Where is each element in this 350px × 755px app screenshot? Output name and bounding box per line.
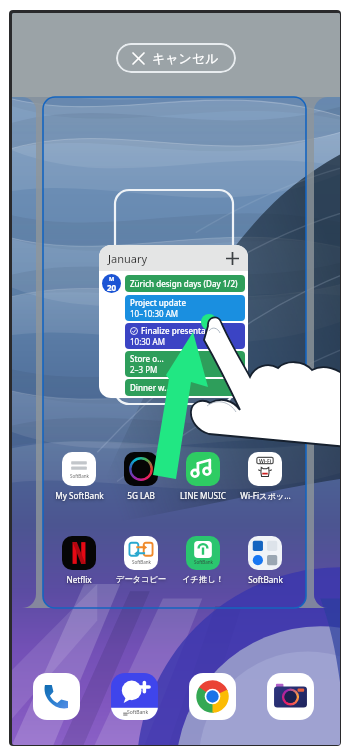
staticText: Dinner w…: [130, 382, 171, 393]
staticText: Netflix: [66, 574, 92, 585]
staticText: 5G LAB: [127, 490, 155, 501]
staticText: Zürich design days (Day 1/2): [130, 278, 238, 289]
button[interactable]: January: [99, 245, 248, 398]
staticText: SoftBank: [194, 559, 213, 565]
staticText: Store o…: [130, 353, 164, 364]
staticText: M: [109, 275, 115, 282]
staticText: SoftBank: [132, 559, 151, 565]
button[interactable]: Messages: [111, 673, 158, 720]
staticText: 10:30 AM: [130, 336, 165, 347]
button[interactable]: Wi-Fi: [237, 452, 293, 501]
button[interactable]: SoftBank: [113, 536, 169, 584]
button[interactable]: Netflix: [51, 536, 107, 585]
button[interactable]: SoftBank: [175, 536, 231, 584]
button[interactable]: SoftBank: [51, 452, 107, 501]
staticText: Finalize presenta…: [141, 325, 213, 336]
staticText: キャンセル: [152, 50, 219, 66]
staticText: Wi-Fiスポッ…: [240, 490, 291, 501]
staticText: SoftBank: [248, 574, 283, 585]
button[interactable]: 5G LAB: [113, 452, 169, 501]
staticText: 10–10:30 AM: [130, 308, 179, 319]
button[interactable]: SoftBank: [237, 536, 293, 585]
staticText: SoftBank: [127, 709, 149, 716]
button[interactable]: キャンセル: [116, 43, 236, 73]
staticText: SoftBank: [70, 473, 89, 479]
staticText: 20: [107, 282, 117, 293]
staticText: データコピー: [116, 574, 166, 584]
staticText: 2–3 PM: [130, 364, 158, 375]
button[interactable]: LINE MUSIC: [175, 452, 231, 501]
button[interactable]: Camera: [267, 673, 314, 720]
staticText: LINE MUSIC: [180, 490, 226, 501]
button[interactable]: Phone: [33, 673, 80, 720]
staticText: Wi-Fi: [259, 458, 272, 465]
staticText: イチ推し！: [182, 574, 224, 584]
staticText: My SoftBank: [55, 490, 104, 501]
button[interactable]: Chrome: [189, 673, 236, 720]
staticText: January: [108, 251, 148, 266]
staticText: Project update: [130, 297, 186, 308]
